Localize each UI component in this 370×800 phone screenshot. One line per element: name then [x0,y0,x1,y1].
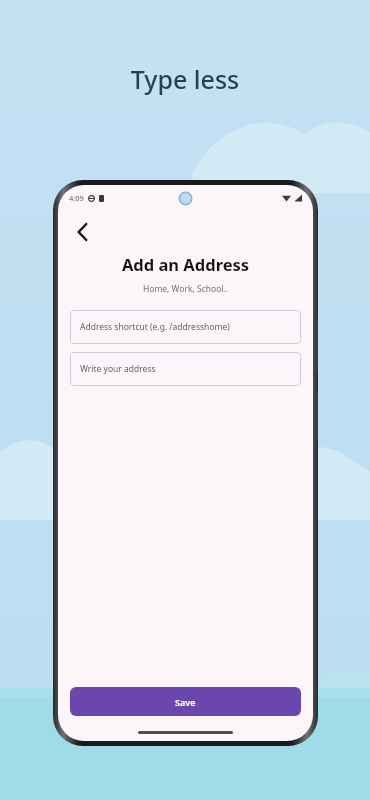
staticText: 4:09 [69,193,84,203]
staticText: Type less [0,62,370,96]
button[interactable]: Address shortcut (e.g. /addresshome) [70,310,301,344]
staticText: Save [175,696,196,708]
button[interactable]: Write your address [70,352,301,386]
staticText: Home, Work, School.. [58,283,313,295]
staticText: Address shortcut (e.g. /addresshome) [80,321,230,333]
button[interactable]: Save [70,687,301,716]
staticText: Add an Address [58,253,313,275]
button[interactable]: Back [67,217,97,247]
staticText: Write your address [80,363,156,375]
